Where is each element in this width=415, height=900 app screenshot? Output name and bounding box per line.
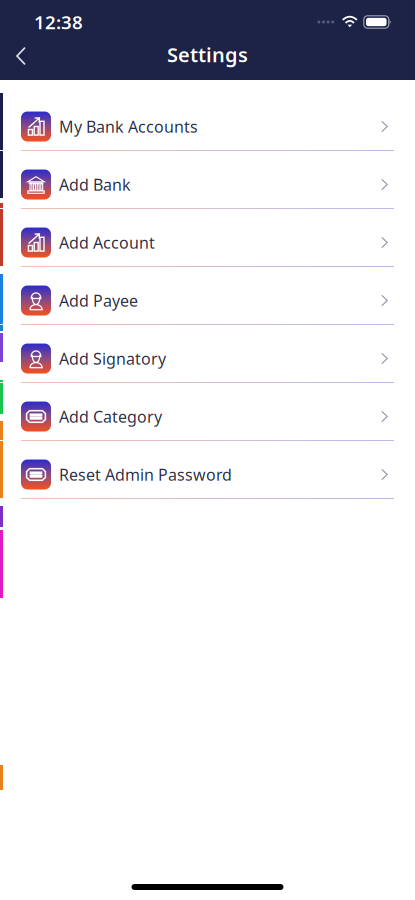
button[interactable]: Add Signatory <box>0 325 415 382</box>
staticText: Add Bank <box>59 174 131 195</box>
button[interactable]: Add Bank <box>0 151 415 208</box>
button[interactable]: Back <box>0 42 40 79</box>
button[interactable]: Add Account <box>0 209 415 266</box>
button[interactable]: Add Category <box>0 383 415 440</box>
button[interactable]: Add Payee <box>0 267 415 324</box>
staticText: Add Account <box>59 232 155 253</box>
staticText: Reset Admin Password <box>59 464 232 485</box>
staticText: Add Signatory <box>59 348 166 369</box>
staticText: Add Payee <box>59 290 138 311</box>
staticText: Add Category <box>59 406 162 427</box>
button[interactable]: My Bank Accounts <box>0 93 415 150</box>
button[interactable]: Reset Admin Password <box>0 441 415 498</box>
staticText: My Bank Accounts <box>59 116 198 137</box>
staticText: 12:38 <box>34 10 83 34</box>
staticText: Settings <box>167 41 248 68</box>
